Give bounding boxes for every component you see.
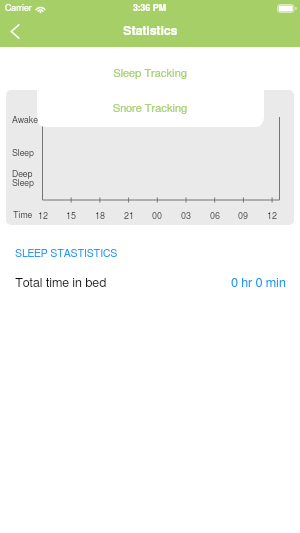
staticText: 09 [233,212,253,221]
staticText: 18 [90,212,110,221]
staticText: SLEEP STASTISTICS [15,249,118,260]
staticText: 12 [262,212,282,221]
staticText: Time [13,211,33,220]
staticText: Total time in bed [15,277,107,290]
staticText: Statistics [123,25,178,38]
staticText: 21 [119,212,139,221]
staticText: 00 [147,212,167,221]
staticText: Deep [12,170,33,179]
staticText: 03 [176,212,196,221]
button[interactable]: Back [0,17,30,45]
staticText: Sleep [12,179,34,188]
staticText: 0 hr 0 min [231,277,286,290]
staticText: Sleep [12,149,34,158]
staticText: Sleep Tracking [0,68,300,79]
staticText: Awake [12,116,38,125]
staticText: Snore Tracking [0,103,300,114]
staticText: 12 [33,212,53,221]
staticText: 3:36 PM [133,4,167,13]
staticText: 06 [205,212,225,221]
staticText: Carrier [5,4,32,13]
staticText: 15 [61,212,81,221]
